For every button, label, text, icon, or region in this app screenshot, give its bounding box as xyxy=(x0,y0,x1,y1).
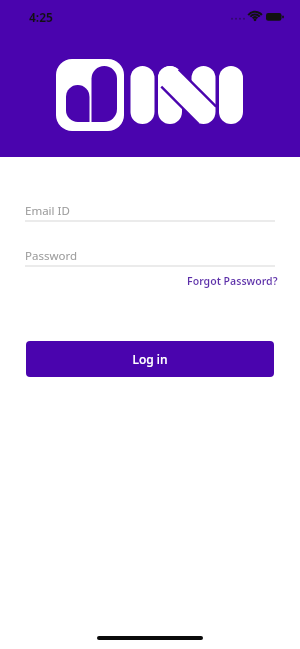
button[interactable]: Log in xyxy=(26,341,274,377)
button[interactable]: Password xyxy=(25,241,275,267)
staticText: Forgot Password? xyxy=(187,274,278,288)
button[interactable]: Forgot Password? xyxy=(160,271,278,291)
staticText: Email ID xyxy=(25,203,70,219)
staticText: Password xyxy=(25,248,78,264)
staticText: Log in xyxy=(132,351,168,367)
button[interactable]: Email ID xyxy=(25,196,275,222)
staticText: 4:25 xyxy=(29,9,53,25)
